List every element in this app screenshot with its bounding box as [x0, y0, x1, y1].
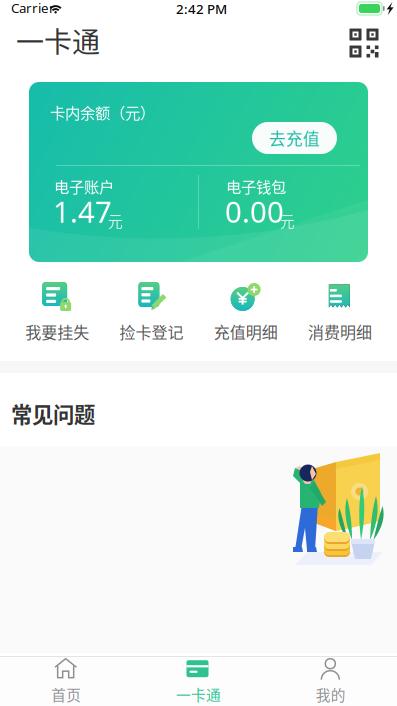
staticText: Carrier [11, 0, 55, 17]
staticText: 1.47 [53, 192, 112, 231]
button[interactable]: 消费明细 [293, 278, 387, 347]
button[interactable]: 捡卡登记 [104, 278, 198, 347]
staticText: 卡内余额（元） [50, 101, 155, 123]
staticText: 常见问题 [11, 398, 95, 429]
button[interactable]: 我的 [265, 653, 397, 706]
staticText: 首页 [51, 684, 81, 705]
staticText: 捡卡登记 [119, 320, 183, 343]
staticText: 一卡通 [16, 20, 100, 60]
button[interactable]: 首页 [0, 653, 132, 706]
staticText: 电子钱包 [226, 175, 286, 197]
staticText: 2:42 PM [176, 0, 227, 18]
button[interactable]: 去充值 [252, 122, 337, 154]
button[interactable]: 我要挂失 [10, 278, 104, 347]
button[interactable]: 一卡通 [132, 653, 265, 706]
button[interactable]: 扫一扫 [343, 22, 385, 64]
staticText: 元 [108, 210, 123, 231]
staticText: 一卡通 [176, 684, 221, 705]
staticText: 我要挂失 [25, 320, 89, 343]
staticText: 0.00 [225, 192, 284, 231]
staticText: 去充值 [269, 126, 320, 150]
button[interactable]: 充值明细 [198, 278, 293, 347]
staticText: 元 [280, 210, 295, 231]
staticText: 充值明细 [214, 320, 278, 343]
staticText: 电子账户 [54, 175, 114, 197]
staticText: 我的 [316, 684, 346, 705]
staticText: 消费明细 [308, 320, 372, 343]
